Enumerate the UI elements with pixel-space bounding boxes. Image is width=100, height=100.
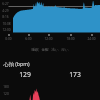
staticText: 浅い	[51, 48, 59, 53]
staticText: 4:29	[2, 9, 9, 13]
staticText: 12:00	[2, 28, 11, 32]
button[interactable]: 覚醒	[40, 48, 50, 53]
staticText: 12:00	[44, 37, 53, 41]
staticText: 6:00	[25, 37, 32, 41]
staticText: 心拍 (bpm)	[3, 60, 30, 67]
staticText: 24:00	[87, 37, 96, 41]
staticText: 0:00	[5, 37, 12, 41]
staticText: 6:27	[2, 2, 9, 6]
staticText: 8:16	[2, 15, 9, 19]
staticText: 129	[19, 70, 31, 79]
staticText: 120	[3, 92, 9, 96]
staticText: 覚醒	[41, 48, 49, 53]
button[interactable]: 深い	[60, 48, 70, 53]
staticText: 173	[69, 70, 81, 79]
staticText: 180	[3, 85, 9, 89]
staticText: 睡眠	[31, 48, 39, 53]
staticText: 深い	[61, 48, 69, 53]
button[interactable]: 睡眠	[30, 48, 40, 53]
staticText: 10:08	[2, 22, 11, 26]
button[interactable]: 浅い	[50, 48, 60, 53]
staticText: 18:00	[66, 37, 75, 41]
